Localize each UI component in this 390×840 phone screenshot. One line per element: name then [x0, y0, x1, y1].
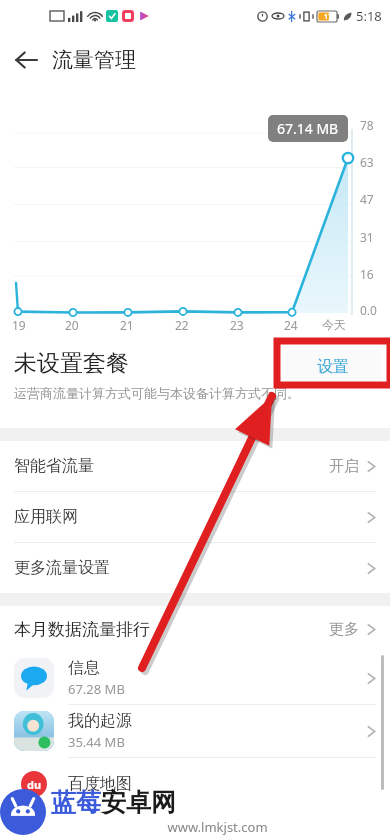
staticText: 5:18	[356, 7, 382, 25]
button[interactable]: du	[0, 758, 390, 810]
staticText: 78	[360, 117, 374, 133]
staticText: 本月数据流量排行	[14, 619, 150, 640]
staticText: 0.0	[360, 302, 377, 318]
button[interactable]: Back	[0, 34, 52, 86]
staticText: 24	[284, 317, 298, 333]
staticText: 47	[360, 191, 374, 207]
staticText: 31	[360, 229, 374, 245]
staticText: 35.44 MB	[68, 733, 125, 751]
staticText: 67.28 MB	[68, 680, 125, 698]
button[interactable]: 信息	[0, 652, 390, 704]
staticText: 更多流量设置	[14, 558, 110, 578]
staticText: 63	[360, 154, 374, 170]
staticText: 安卓网	[101, 787, 176, 818]
button[interactable]: 本月数据流量排行	[0, 606, 390, 652]
staticText: 开启	[329, 457, 359, 476]
staticText: 应用联网	[14, 507, 78, 527]
button[interactable]: 设置	[285, 350, 381, 384]
staticText: 22	[175, 317, 189, 333]
staticText: 百度地图	[68, 774, 132, 794]
staticText: 信息	[68, 658, 100, 678]
button[interactable]: 应用联网	[0, 492, 390, 542]
staticText: 67.14 MB	[277, 119, 339, 138]
staticText: 我的起源	[68, 711, 132, 731]
staticText: 17	[324, 12, 333, 22]
staticText: 今天	[322, 317, 346, 332]
button[interactable]: 智能省流量	[0, 441, 390, 491]
staticText: www.lmkjst.com	[51, 818, 384, 836]
staticText: 未设置套餐	[14, 349, 129, 378]
staticText: 16	[360, 266, 374, 282]
staticText: 23	[230, 317, 244, 333]
button[interactable]: 更多流量设置	[0, 543, 390, 593]
staticText: 设置	[317, 357, 349, 377]
staticText: 20	[65, 317, 79, 333]
staticText: 更多	[329, 620, 359, 639]
staticText: 智能省流量	[14, 456, 94, 476]
staticText: du	[27, 777, 42, 792]
staticText: 运营商流量计算方式可能与本设备计算方式不同。	[14, 385, 300, 401]
staticText: 流量管理	[52, 47, 136, 73]
staticText: 蓝莓	[51, 787, 101, 818]
staticText: 21	[120, 317, 134, 333]
staticText: 19	[12, 317, 26, 333]
button[interactable]: 我的起源	[0, 705, 390, 757]
